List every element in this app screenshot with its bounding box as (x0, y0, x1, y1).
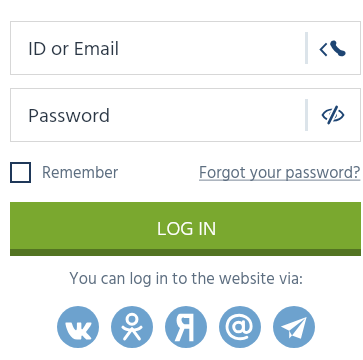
button[interactable]: Telegram (273, 306, 315, 348)
button[interactable]: Log in with phone number (308, 22, 361, 74)
staticText: ID or Email (28, 34, 120, 66)
staticText: You can log in to the website via: (69, 267, 303, 293)
button[interactable]: Yandex (165, 306, 207, 348)
button[interactable]: VK (57, 306, 99, 348)
button[interactable]: Forgot your password? (199, 161, 361, 185)
button[interactable]: ID or Email (10, 21, 361, 75)
button[interactable]: Password (10, 88, 361, 142)
staticText: LOG IN (157, 214, 217, 246)
button[interactable]: Odnoklassniki (111, 306, 153, 348)
button[interactable]: Mail.ru (219, 306, 261, 348)
button[interactable]: LOG IN (10, 202, 361, 256)
staticText: Remember (42, 161, 119, 185)
button[interactable]: Show password (308, 89, 361, 141)
staticText: Password (28, 101, 111, 133)
button[interactable]: Remember (10, 160, 119, 184)
